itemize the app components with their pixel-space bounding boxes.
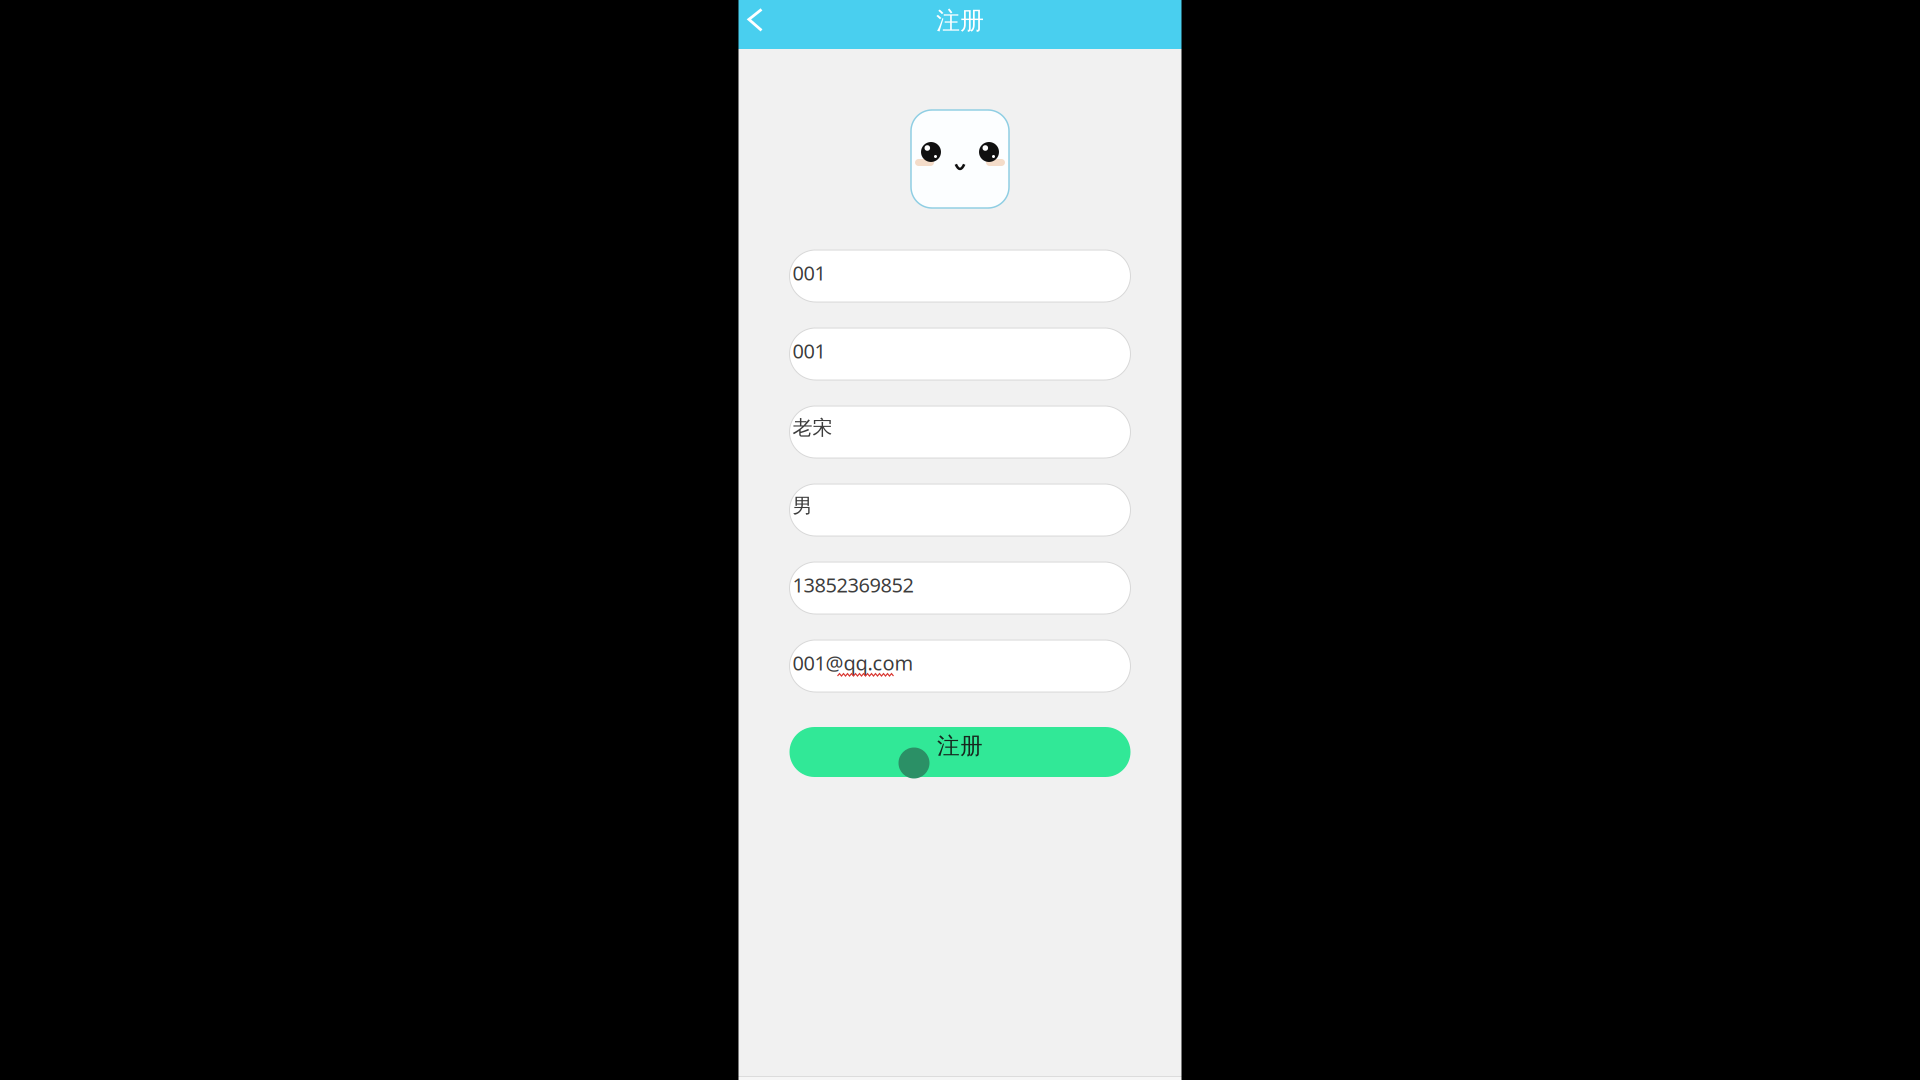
staticText: 老宋 (792, 415, 832, 440)
staticText: 13852369852 (792, 571, 913, 598)
staticText: 001 (792, 259, 825, 286)
staticText: 注册 (936, 6, 984, 35)
button[interactable]: 注册 (789, 727, 1130, 777)
button[interactable]: 001 (789, 328, 1130, 380)
button[interactable]: 男 (789, 484, 1130, 536)
button[interactable]: 13852369852 (789, 562, 1130, 614)
button[interactable]: 001@qq.com (789, 640, 1130, 692)
button[interactable]: 001 (789, 250, 1130, 302)
staticText: 男 (792, 493, 812, 518)
staticText: 注册 (937, 732, 983, 760)
staticText: 001 (792, 337, 825, 364)
button[interactable]: 老宋 (789, 406, 1130, 458)
button[interactable]: Back (738, 0, 772, 49)
staticText: 001@qq.com (792, 649, 913, 676)
